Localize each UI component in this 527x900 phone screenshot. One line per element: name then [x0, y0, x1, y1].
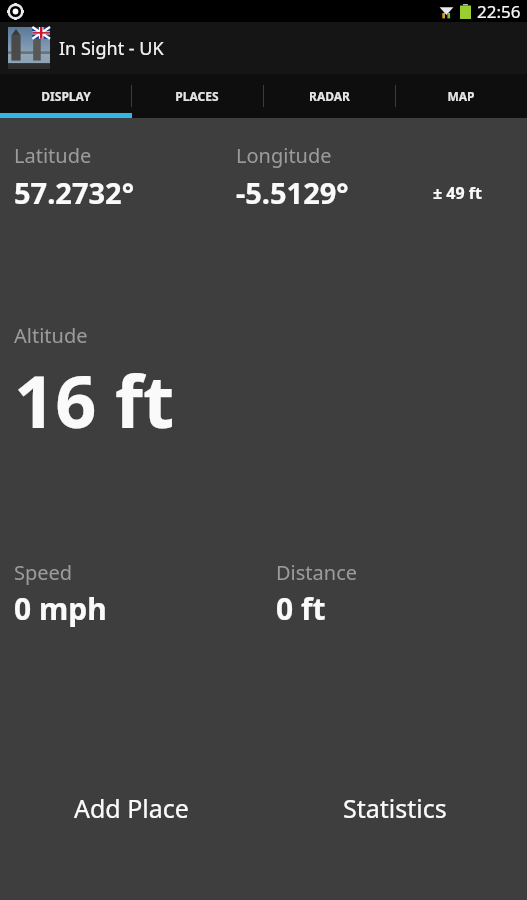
staticText: DISPLAY — [41, 88, 91, 104]
staticText: Speed — [14, 559, 73, 586]
button[interactable]: MAP — [395, 74, 527, 118]
staticText: PLACES — [175, 88, 219, 104]
staticText: In Sight - UK — [59, 36, 164, 61]
staticText: ± 49 ft — [433, 182, 482, 204]
other: Wi-Fi — [439, 4, 454, 19]
staticText: Statistics — [343, 791, 447, 825]
button[interactable]: In Sight - UK — [0, 22, 527, 74]
button[interactable]: Statistics — [263, 786, 527, 830]
staticText: 16 ft — [14, 351, 175, 449]
staticText: -5.5129° — [236, 173, 349, 204]
button[interactable]: Add Place — [0, 786, 263, 830]
other: Battery — [460, 4, 471, 19]
staticText: Longitude — [236, 142, 332, 169]
staticText: Altitude — [14, 322, 88, 349]
button[interactable]: DISPLAY — [0, 74, 131, 118]
staticText: RADAR — [309, 88, 350, 104]
staticText: 22:56 — [477, 0, 521, 22]
staticText: MAP — [447, 88, 475, 104]
staticText: Latitude — [14, 142, 92, 169]
staticText: 57.2732° — [14, 173, 134, 204]
button[interactable]: PLACES — [131, 74, 263, 118]
staticText: 0 ft — [276, 588, 326, 629]
other: GPS active — [7, 3, 24, 20]
staticText: Distance — [276, 559, 358, 586]
staticText: 0 mph — [14, 588, 107, 629]
button[interactable]: RADAR — [263, 74, 395, 118]
staticText: Add Place — [74, 791, 189, 825]
